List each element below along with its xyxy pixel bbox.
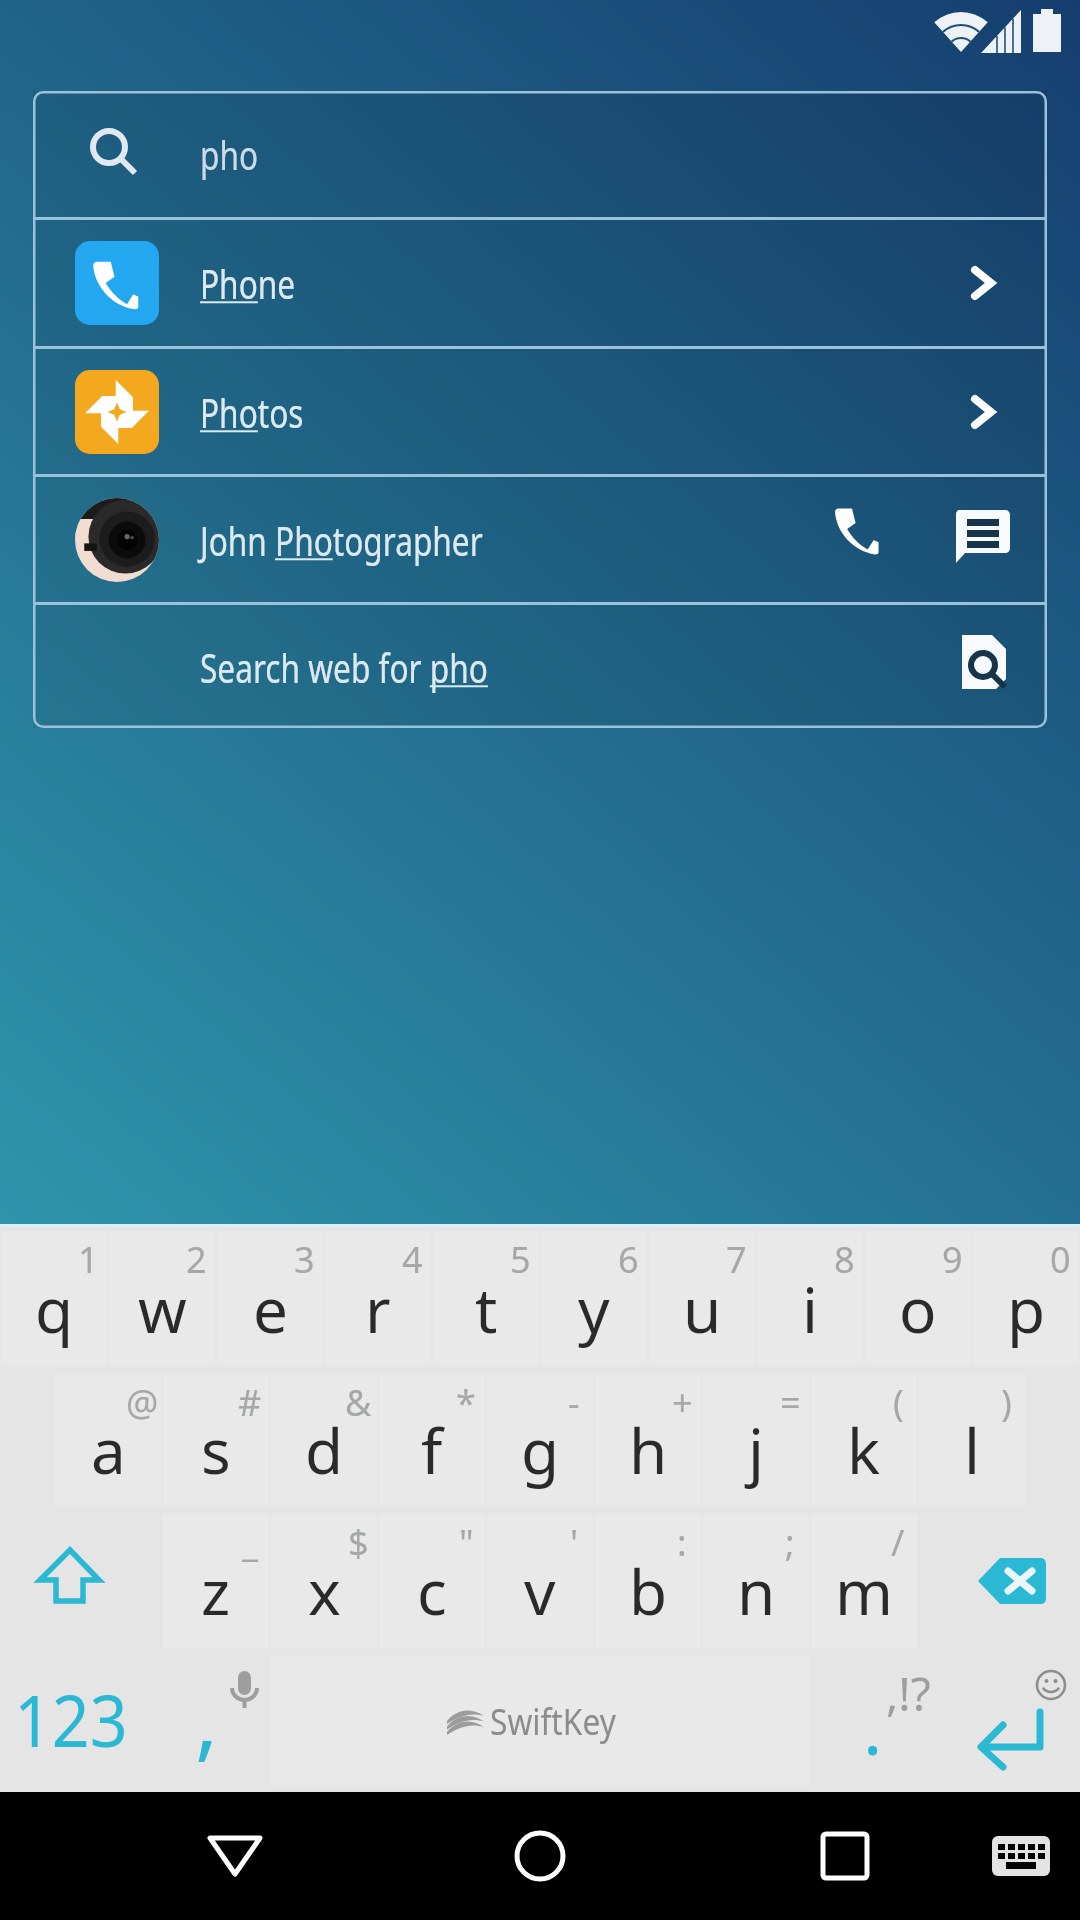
staticText: a — [91, 1408, 126, 1492]
button[interactable]: ' — [487, 1514, 593, 1648]
staticText: 3 — [294, 1235, 315, 1284]
button[interactable]: * — [379, 1374, 485, 1506]
button[interactable]: ; — [703, 1514, 809, 1648]
button[interactable]: 0 — [973, 1231, 1079, 1366]
button[interactable]: John Photographer — [33, 477, 1047, 602]
button[interactable]: ( — [811, 1374, 917, 1506]
staticText: , — [195, 1659, 219, 1776]
button[interactable]: 7 — [649, 1231, 755, 1366]
button[interactable]: Back — [145, 1792, 325, 1920]
button[interactable]: _ — [163, 1514, 269, 1648]
button[interactable]: Open Photos — [929, 349, 1047, 474]
staticText: pho — [200, 127, 258, 181]
button[interactable]: Message — [919, 477, 1047, 602]
staticText: h — [629, 1408, 668, 1492]
staticText: u — [683, 1267, 722, 1351]
staticText: 7 — [726, 1235, 747, 1284]
staticText: p — [1007, 1267, 1046, 1351]
staticText: n — [737, 1549, 776, 1633]
button[interactable]: / — [811, 1514, 917, 1648]
button[interactable]: Photos — [33, 349, 1047, 474]
staticText: = — [780, 1378, 801, 1427]
staticText: d — [305, 1408, 344, 1492]
button[interactable]: Space — [270, 1656, 810, 1786]
staticText: ,!? — [886, 1662, 931, 1725]
button[interactable]: Home — [450, 1792, 630, 1920]
staticText: x — [308, 1549, 341, 1633]
button[interactable]: " — [379, 1514, 485, 1648]
button[interactable]: 2 — [109, 1231, 215, 1366]
staticText: Phone — [200, 256, 296, 310]
staticText: + — [672, 1378, 693, 1427]
button[interactable]: ,!? — [810, 1652, 918, 1792]
button[interactable]: 5 — [433, 1231, 539, 1366]
button[interactable]: Switch keyboard — [962, 1792, 1080, 1920]
staticText: / — [891, 1518, 905, 1567]
staticText: SwiftKey — [490, 1697, 616, 1746]
staticText: k — [847, 1408, 881, 1492]
button[interactable]: # — [163, 1374, 269, 1506]
button[interactable]: Enter — [918, 1652, 1080, 1792]
button[interactable]: , — [162, 1652, 270, 1792]
button[interactable]: Open Phone — [929, 220, 1047, 346]
staticText: @ — [126, 1378, 159, 1427]
button[interactable]: + — [595, 1374, 701, 1506]
staticText: 4 — [402, 1235, 423, 1284]
staticText: * — [456, 1378, 476, 1427]
staticText: r — [365, 1267, 391, 1351]
staticText: z — [201, 1549, 231, 1633]
button[interactable]: 1 — [1, 1231, 107, 1366]
staticText: w — [138, 1267, 187, 1351]
button[interactable]: ) — [919, 1374, 1025, 1506]
button[interactable]: 9 — [865, 1231, 971, 1366]
staticText: 9 — [942, 1235, 963, 1284]
staticText: l — [964, 1408, 980, 1492]
staticText: c — [417, 1549, 447, 1633]
staticText: s — [201, 1408, 231, 1492]
staticText: ; — [785, 1518, 795, 1567]
staticText: 6 — [618, 1235, 639, 1284]
staticText: g — [521, 1408, 560, 1492]
staticText: ( — [893, 1378, 904, 1427]
button[interactable]: Phone — [33, 220, 1047, 346]
staticText: ) — [1001, 1378, 1012, 1427]
button[interactable]: Backspace — [918, 1510, 1080, 1652]
staticText: 1 — [78, 1235, 99, 1284]
staticText: John Photographer — [200, 513, 483, 567]
staticText: " — [459, 1518, 474, 1567]
staticText: : — [677, 1518, 687, 1567]
staticText: - — [568, 1378, 580, 1427]
staticText: t — [475, 1267, 498, 1351]
button[interactable]: pho — [33, 91, 1047, 217]
staticText: o — [899, 1267, 937, 1351]
staticText: # — [238, 1378, 262, 1427]
staticText: m — [835, 1549, 893, 1633]
button[interactable]: 123 — [0, 1652, 162, 1792]
button[interactable]: = — [703, 1374, 809, 1506]
button[interactable]: Search web — [921, 605, 1047, 728]
button[interactable]: & — [271, 1374, 377, 1506]
button[interactable]: - — [487, 1374, 593, 1506]
staticText: Search web for pho — [200, 640, 488, 694]
staticText: & — [345, 1378, 372, 1427]
staticText: 123 — [14, 1670, 128, 1768]
staticText: 2 — [186, 1235, 207, 1284]
staticText: Photos — [200, 385, 303, 439]
button[interactable]: Search web for pho — [33, 605, 1047, 728]
button[interactable]: Call — [797, 477, 919, 602]
staticText: b — [629, 1549, 668, 1633]
button[interactable]: $ — [271, 1514, 377, 1648]
button[interactable]: 8 — [757, 1231, 863, 1366]
button[interactable]: : — [595, 1514, 701, 1648]
staticText: 5 — [510, 1235, 531, 1284]
button[interactable]: Recents — [755, 1792, 935, 1920]
button[interactable]: Shift — [0, 1510, 162, 1652]
staticText: 8 — [834, 1235, 855, 1284]
button[interactable]: @ — [55, 1374, 161, 1506]
staticText: i — [802, 1267, 818, 1351]
staticText: j — [748, 1408, 764, 1492]
button[interactable]: 3 — [217, 1231, 323, 1366]
staticText: e — [253, 1267, 288, 1351]
button[interactable]: 6 — [541, 1231, 647, 1366]
button[interactable]: 4 — [325, 1231, 431, 1366]
